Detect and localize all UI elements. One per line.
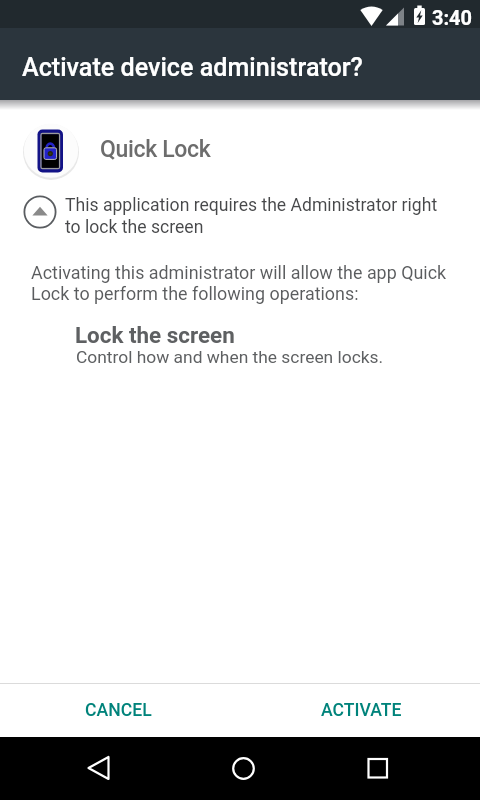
staticText: ACTIVATE	[321, 700, 402, 721]
staticText: Quick Lock	[100, 136, 211, 163]
staticText: 3:40	[432, 6, 473, 29]
button[interactable]	[222, 747, 264, 790]
staticText: This application requires the Administra…	[65, 195, 438, 238]
staticText: Lock the screen	[75, 322, 235, 348]
staticText: Control how and when the screen locks.	[76, 347, 384, 367]
button[interactable]: ACTIVATE	[305, 684, 417, 737]
button[interactable]	[78, 747, 120, 790]
button[interactable]: CANCEL	[63, 684, 174, 737]
button[interactable]	[357, 747, 399, 790]
staticText: CANCEL	[85, 700, 152, 721]
staticText: Activate device administrator?	[22, 53, 363, 82]
staticText: Activating this administrator will allow…	[31, 262, 447, 304]
